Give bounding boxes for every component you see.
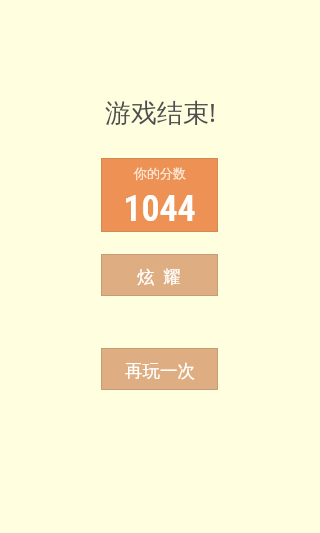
button[interactable]: 再玩一次 <box>101 348 218 390</box>
staticText: 1044 <box>123 188 196 230</box>
staticText: 炫 耀 <box>137 264 183 288</box>
staticText: 游戏结束! <box>105 94 216 130</box>
button[interactable]: 炫 耀 <box>101 254 218 296</box>
staticText: 再玩一次 <box>125 360 195 382</box>
staticText: 你的分数 <box>134 165 186 181</box>
